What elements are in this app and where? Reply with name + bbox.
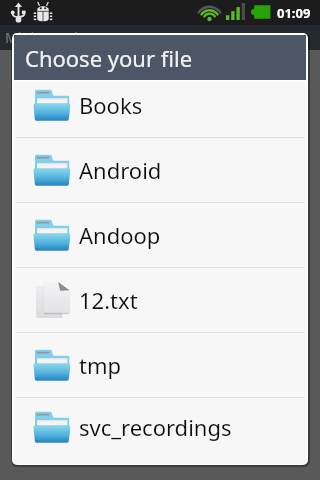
other: USB connected [10, 2, 27, 23]
other: USB debugging [32, 1, 54, 23]
button[interactable]: Choose your file [14, 35, 306, 80]
staticText: Andoop [79, 220, 161, 250]
staticText: 12.txt [79, 285, 138, 315]
staticText: Mini Translator [5, 28, 106, 47]
button[interactable]: Android [14, 138, 306, 202]
button[interactable]: svc_recordings [14, 398, 306, 455]
staticText: 01:09 [277, 4, 311, 22]
button[interactable]: Andoop [14, 203, 306, 267]
staticText: tmp [79, 350, 122, 380]
button[interactable]: 12.txt [14, 268, 306, 332]
staticText: Books [79, 90, 143, 120]
button[interactable]: Books [14, 73, 306, 137]
button[interactable]: tmp [14, 333, 306, 397]
staticText: svc_recordings [79, 412, 232, 442]
staticText: Android [79, 155, 162, 185]
staticText: Choose your file [25, 43, 193, 73]
